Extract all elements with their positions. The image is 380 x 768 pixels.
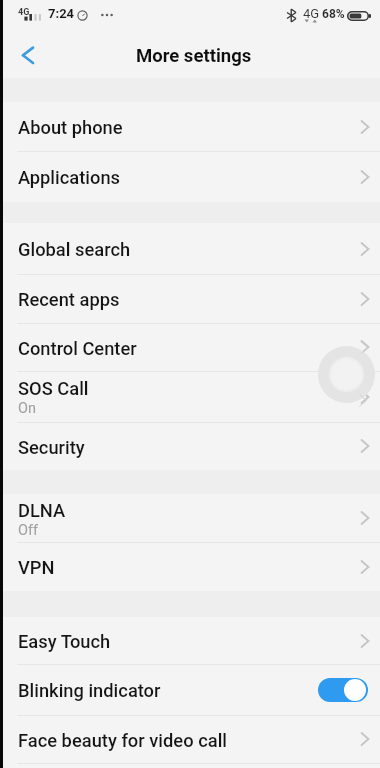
staticText: Applications xyxy=(18,167,121,188)
button[interactable]: Recent apps xyxy=(0,274,380,323)
button[interactable]: Easy touch xyxy=(318,346,375,403)
button[interactable]: About phone xyxy=(0,102,380,151)
staticText: Off xyxy=(18,522,39,539)
staticText: 4G xyxy=(303,6,320,21)
staticText: Recent apps xyxy=(18,289,120,310)
button[interactable] xyxy=(0,763,380,768)
staticText: Blinking indicator xyxy=(18,680,161,701)
staticText: Global search xyxy=(18,239,131,260)
staticText: 4G xyxy=(18,7,30,18)
button[interactable]: VPN xyxy=(0,542,380,591)
button[interactable]: Global search xyxy=(0,223,380,274)
button[interactable]: DLNA xyxy=(0,494,380,542)
staticText: Face beauty for video call xyxy=(18,730,227,751)
button[interactable]: Blinking indicator xyxy=(0,664,380,715)
staticText: About phone xyxy=(18,117,123,138)
staticText: Control Center xyxy=(18,338,137,359)
staticText: More settings xyxy=(136,45,252,67)
staticText: VPN xyxy=(18,557,55,578)
staticText: 7:24 xyxy=(48,6,75,21)
staticText: DLNA xyxy=(18,500,66,521)
staticText: Easy Touch xyxy=(18,631,111,652)
button[interactable]: SOS Call xyxy=(0,371,380,422)
staticText: Security xyxy=(18,437,85,458)
button[interactable]: Applications xyxy=(0,151,380,202)
staticText: 68% xyxy=(322,7,345,21)
staticText: On xyxy=(18,400,36,417)
button[interactable]: Easy Touch xyxy=(0,617,380,664)
staticText: SOS Call xyxy=(18,378,89,399)
button[interactable]: Control Center xyxy=(0,323,380,371)
button[interactable]: Security xyxy=(0,422,380,470)
button[interactable]: Blinking indicator toggle xyxy=(318,678,368,702)
button[interactable]: Back xyxy=(0,28,50,78)
button[interactable]: Face beauty for video call xyxy=(0,715,380,763)
